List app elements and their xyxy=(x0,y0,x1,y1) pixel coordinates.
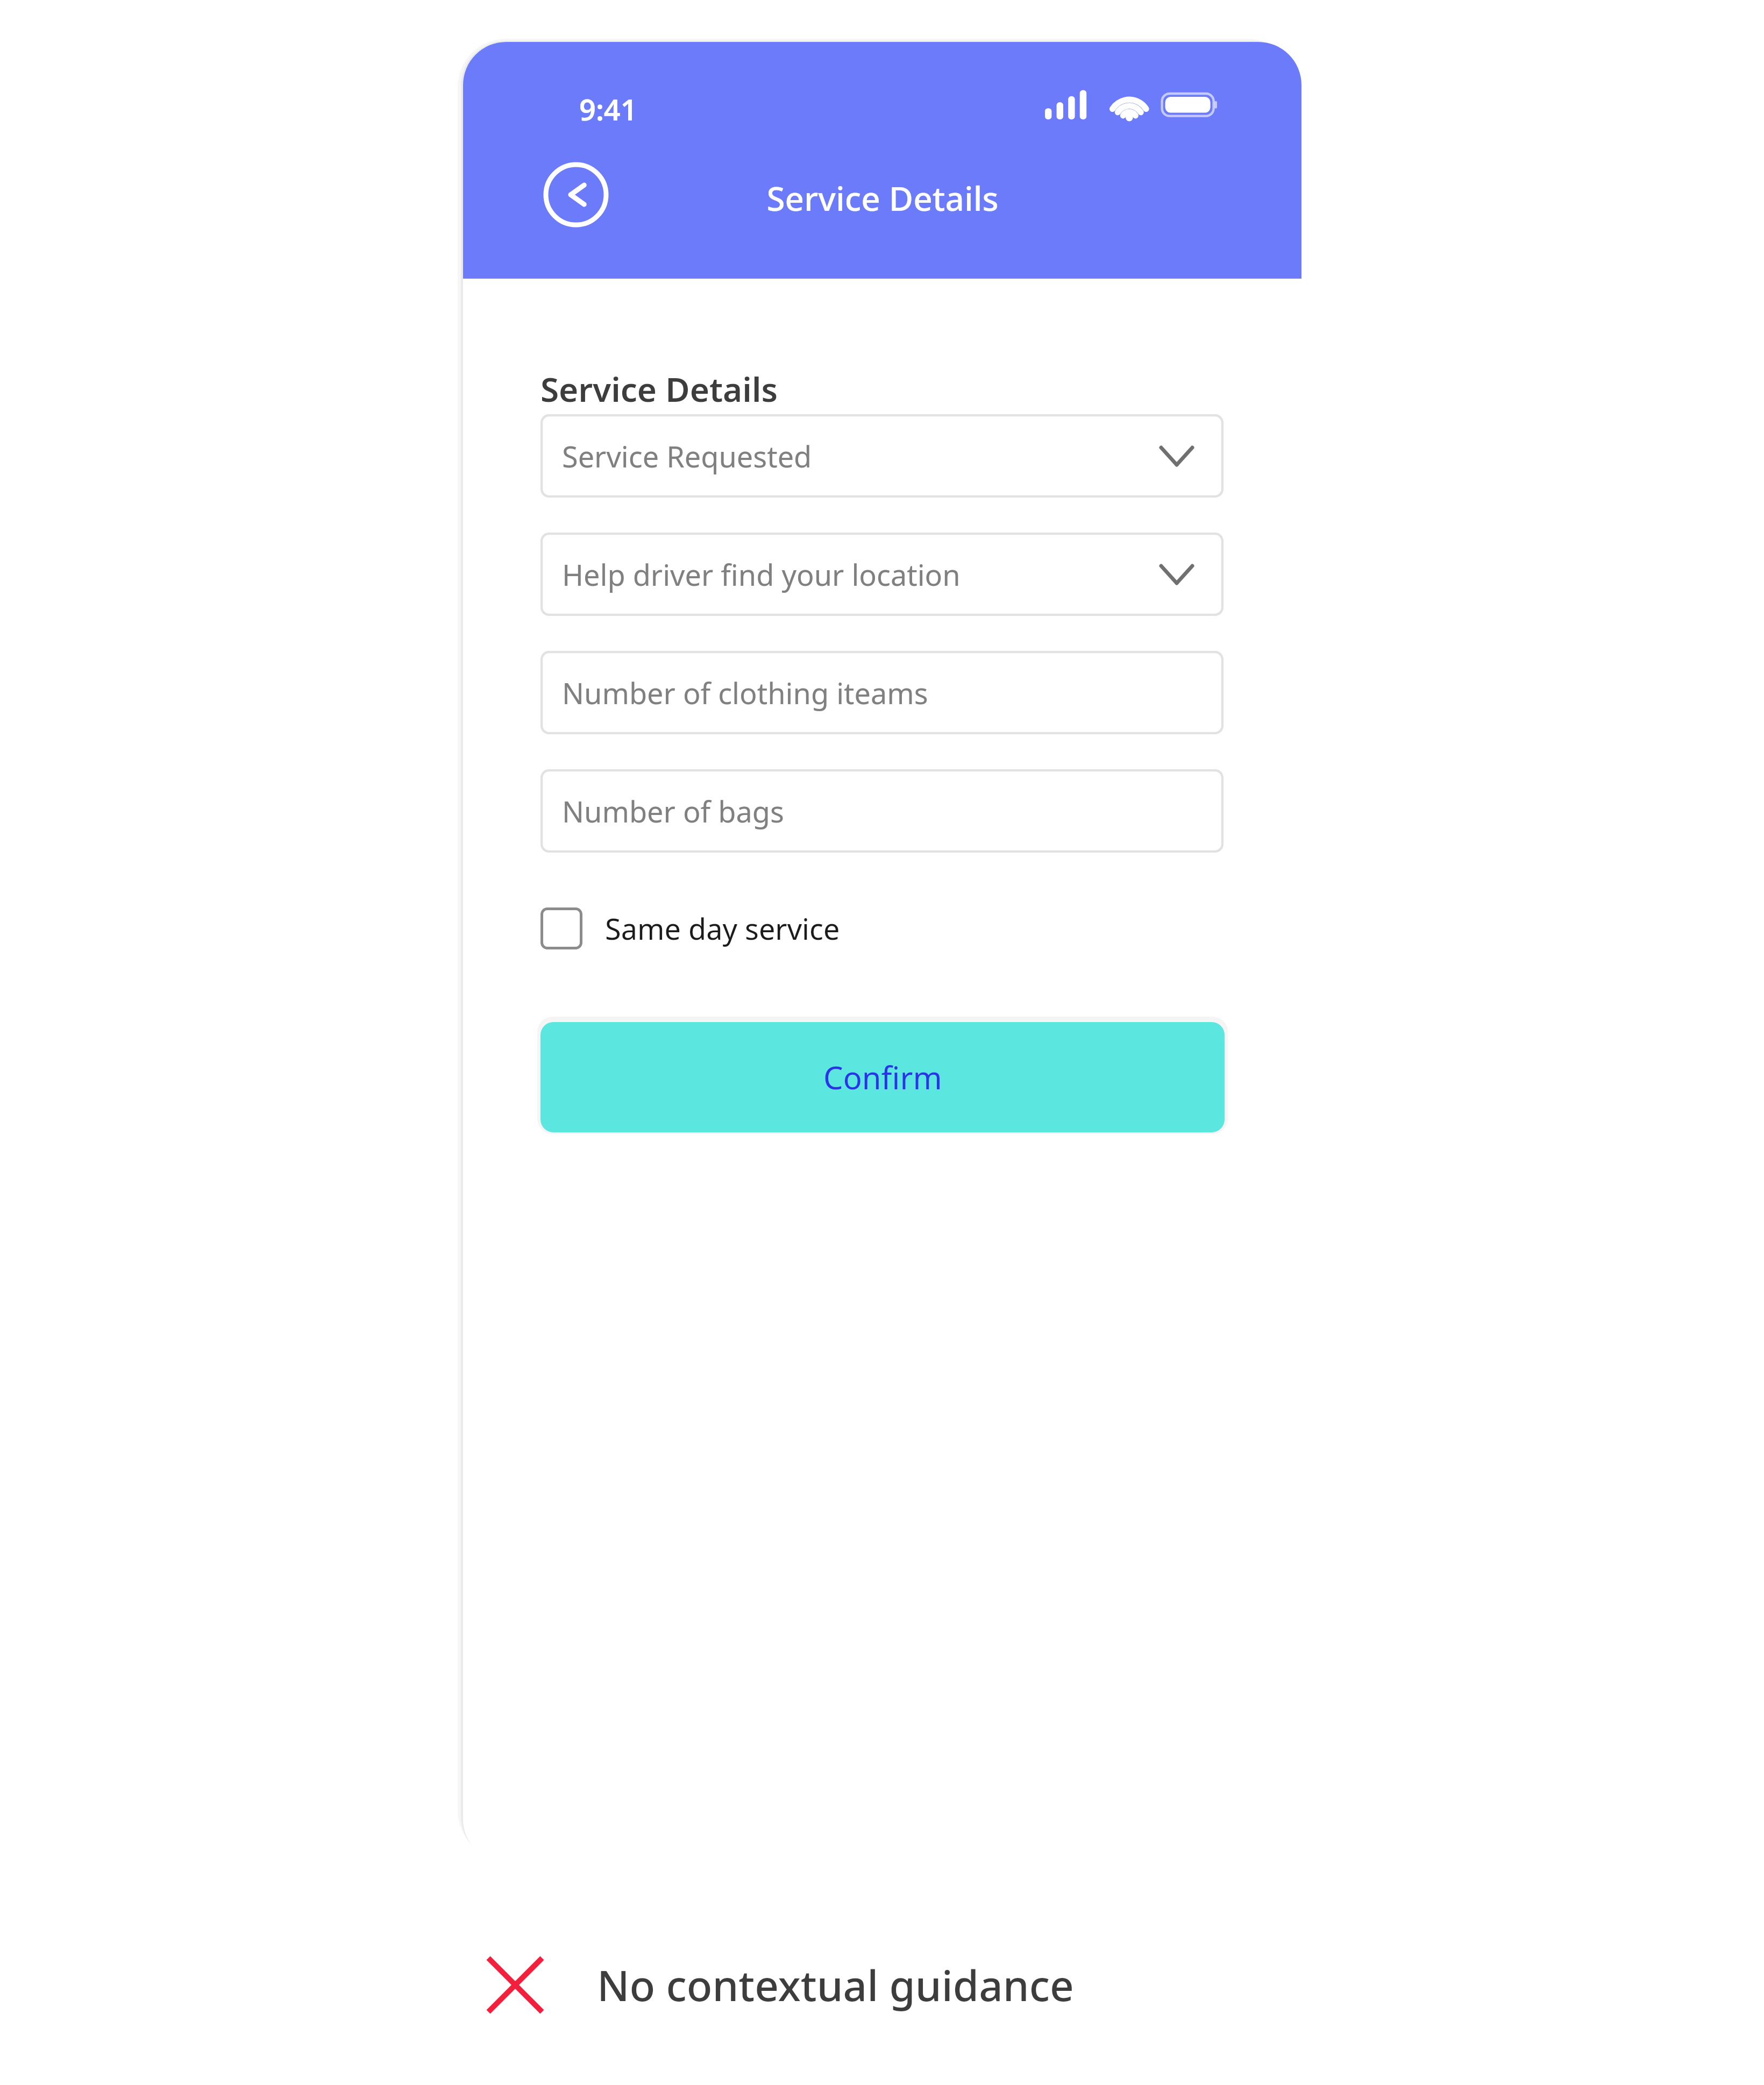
staticText: 9:41 xyxy=(579,89,637,129)
staticText: Confirm xyxy=(823,1056,942,1098)
staticText: Service Details xyxy=(540,366,778,412)
staticText: Service Requested xyxy=(562,436,812,476)
button[interactable]: Number of bags xyxy=(540,769,1224,853)
button[interactable]: Confirm xyxy=(540,1022,1225,1132)
button[interactable]: Number of clothing iteams xyxy=(540,651,1224,734)
staticText: Help driver find your location xyxy=(562,555,961,594)
staticText: Service Details xyxy=(766,175,999,221)
button[interactable]: Same day service xyxy=(540,896,840,961)
button[interactable]: Back xyxy=(543,161,609,228)
button[interactable]: Help driver find your location xyxy=(540,533,1224,616)
staticText: Number of clothing iteams xyxy=(562,673,928,713)
staticText: No contextual guidance xyxy=(597,1956,1074,2013)
button[interactable]: Service Requested xyxy=(540,414,1224,498)
staticText: Same day service xyxy=(605,909,840,948)
staticText: Number of bags xyxy=(562,791,784,831)
